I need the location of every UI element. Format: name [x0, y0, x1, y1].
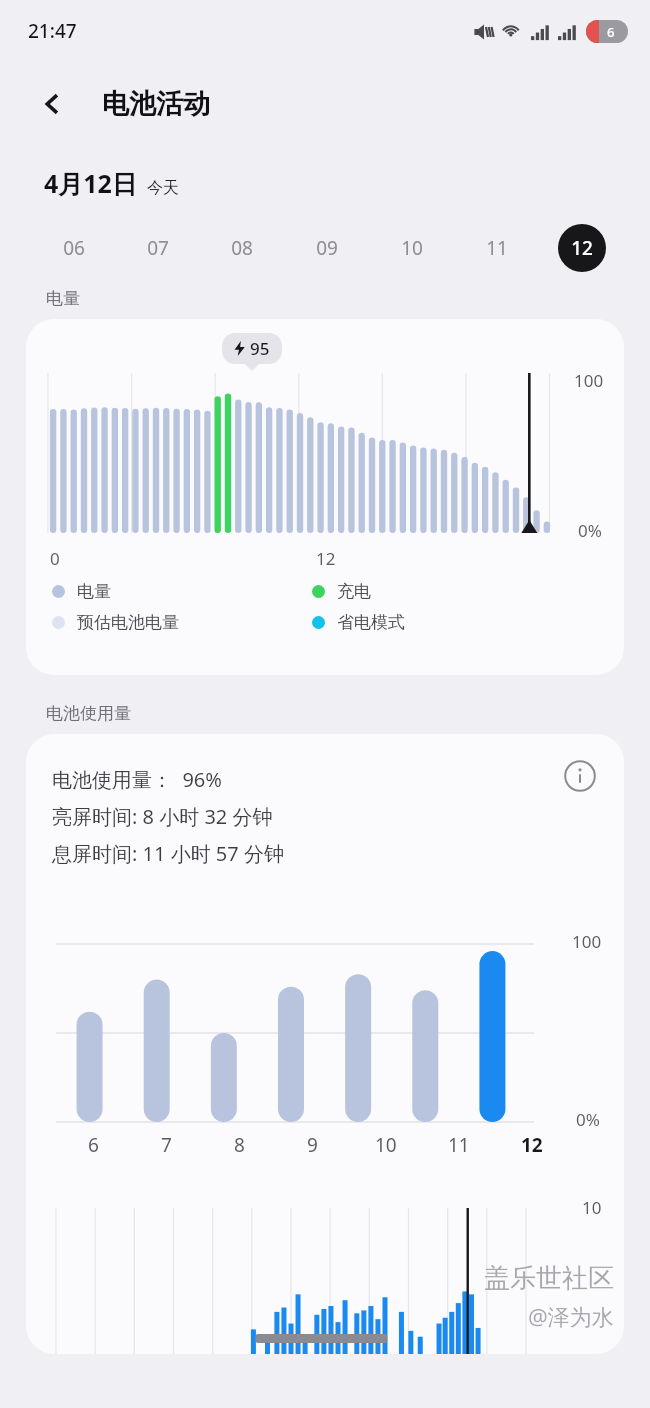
staticText: 07 — [147, 235, 169, 261]
staticText: 0% — [578, 519, 602, 542]
staticText: 100 — [572, 930, 602, 953]
staticText: 12 — [571, 235, 593, 261]
staticText: 息屏时间: 11 小时 57 分钟 — [52, 840, 284, 867]
button[interactable]: 10 — [369, 222, 454, 274]
staticText: 电池使用量： 96% — [52, 766, 222, 793]
staticText: 8 — [234, 1132, 245, 1158]
staticText: @泽为水 — [528, 1301, 614, 1331]
button[interactable]: 100 — [26, 319, 624, 675]
staticText: 08 — [231, 235, 253, 261]
staticText: 12 — [316, 547, 336, 570]
staticText: 4月12日 — [44, 166, 137, 200]
staticText: 10 — [401, 235, 423, 261]
staticText: 10 — [375, 1132, 397, 1158]
staticText: 亮屏时间: 8 小时 32 分钟 — [52, 803, 273, 830]
staticText: 11 — [486, 235, 508, 261]
staticText: 盖乐世社区 — [484, 1262, 614, 1295]
button[interactable]: 07 — [116, 222, 200, 274]
staticText: 7 — [161, 1132, 172, 1158]
staticText: 预估电池电量 — [77, 612, 179, 633]
staticText: 12 — [521, 1132, 543, 1158]
button[interactable]: 09 — [284, 222, 369, 274]
staticText: 省电模式 — [337, 612, 405, 633]
staticText: 95 — [250, 337, 270, 360]
staticText: 09 — [316, 235, 338, 261]
staticText: 0% — [576, 1108, 600, 1131]
button[interactable]: 08 — [200, 222, 284, 274]
staticText: 0 — [50, 547, 60, 570]
button[interactable]: Information — [560, 756, 600, 796]
staticText: 10 — [582, 1196, 602, 1219]
staticText: 电量 — [46, 288, 80, 309]
staticText: 100 — [574, 369, 604, 392]
staticText: 今天 — [147, 178, 179, 198]
staticText: 6 — [607, 23, 615, 41]
button[interactable]: 12 — [539, 222, 624, 274]
button[interactable]: 06 — [32, 222, 116, 274]
button[interactable]: 11 — [454, 222, 539, 274]
staticText: 11 — [448, 1132, 470, 1158]
staticText: 21:47 — [28, 18, 77, 44]
staticText: 电量 — [77, 581, 111, 602]
button[interactable]: Back — [34, 85, 72, 123]
staticText: 电池使用量 — [46, 703, 131, 724]
staticText: 电池活动 — [102, 87, 210, 121]
button[interactable]: 电池使用量： 96% — [26, 734, 624, 1354]
staticText: 6 — [88, 1132, 99, 1158]
staticText: 充电 — [337, 581, 371, 602]
staticText: 06 — [63, 235, 85, 261]
staticText: 9 — [307, 1132, 318, 1158]
